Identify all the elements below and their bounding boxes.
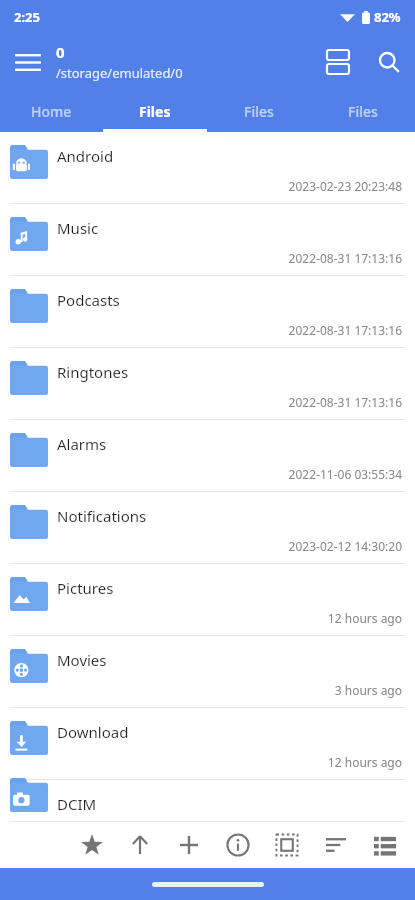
staticText: Podcasts xyxy=(57,290,120,310)
staticText: 2022-08-31 17:13:16 xyxy=(288,394,402,410)
button[interactable]: Select all xyxy=(262,822,311,868)
button[interactable]: Home xyxy=(0,90,103,132)
button[interactable]: Android xyxy=(0,132,415,204)
staticText: 0 xyxy=(56,42,65,62)
staticText: Home xyxy=(31,102,72,121)
button[interactable]: Alarms xyxy=(0,420,415,492)
button[interactable]: View mode xyxy=(360,822,409,868)
button[interactable]: Files xyxy=(207,90,311,132)
staticText: 12 hours ago xyxy=(327,610,402,626)
staticText: Alarms xyxy=(57,434,107,454)
staticText: Movies xyxy=(57,650,107,670)
staticText: Music xyxy=(57,218,99,238)
staticText: 2:25 xyxy=(14,8,40,26)
button[interactable]: Files xyxy=(311,90,415,132)
button[interactable]: Add xyxy=(164,822,213,868)
staticText: DCIM xyxy=(57,794,97,814)
staticText: Download xyxy=(57,722,129,742)
button[interactable]: Ringtones xyxy=(0,348,415,420)
button[interactable]: Favorites xyxy=(68,822,116,868)
staticText: Pictures xyxy=(57,578,114,598)
staticText: 3 hours ago xyxy=(334,682,402,698)
button[interactable]: Music xyxy=(0,204,415,276)
staticText: Files xyxy=(139,102,171,121)
staticText: 2022-11-06 03:55:34 xyxy=(288,466,402,482)
button[interactable]: Search xyxy=(363,36,415,88)
button[interactable]: Sort xyxy=(311,822,360,868)
button[interactable]: Podcasts xyxy=(0,276,415,348)
button[interactable]: Split screen view xyxy=(313,37,363,87)
button[interactable]: Open navigation menu xyxy=(0,34,56,90)
button[interactable]: Notifications xyxy=(0,492,415,564)
staticText: Ringtones xyxy=(57,362,129,382)
button[interactable]: Info xyxy=(213,822,262,868)
button[interactable]: Files xyxy=(103,90,207,132)
staticText: 2022-08-31 17:13:16 xyxy=(288,322,402,338)
staticText: 2023-02-12 14:30:20 xyxy=(288,538,402,554)
button[interactable]: Go up xyxy=(116,822,164,868)
button[interactable]: DCIM xyxy=(0,780,415,822)
staticText: Files xyxy=(348,102,378,121)
staticText: /storage/emulated/0 xyxy=(56,64,183,82)
staticText: Files xyxy=(244,102,274,121)
staticText: Notifications xyxy=(57,506,147,526)
staticText: 2023-02-23 20:23:48 xyxy=(288,178,402,194)
staticText: Android xyxy=(57,146,114,166)
button[interactable]: Movies xyxy=(0,636,415,708)
staticText: 82% xyxy=(374,8,401,26)
staticText: 12 hours ago xyxy=(327,754,402,770)
button[interactable]: Download xyxy=(0,708,415,780)
staticText: 2022-08-31 17:13:16 xyxy=(288,250,402,266)
button[interactable]: Pictures xyxy=(0,564,415,636)
